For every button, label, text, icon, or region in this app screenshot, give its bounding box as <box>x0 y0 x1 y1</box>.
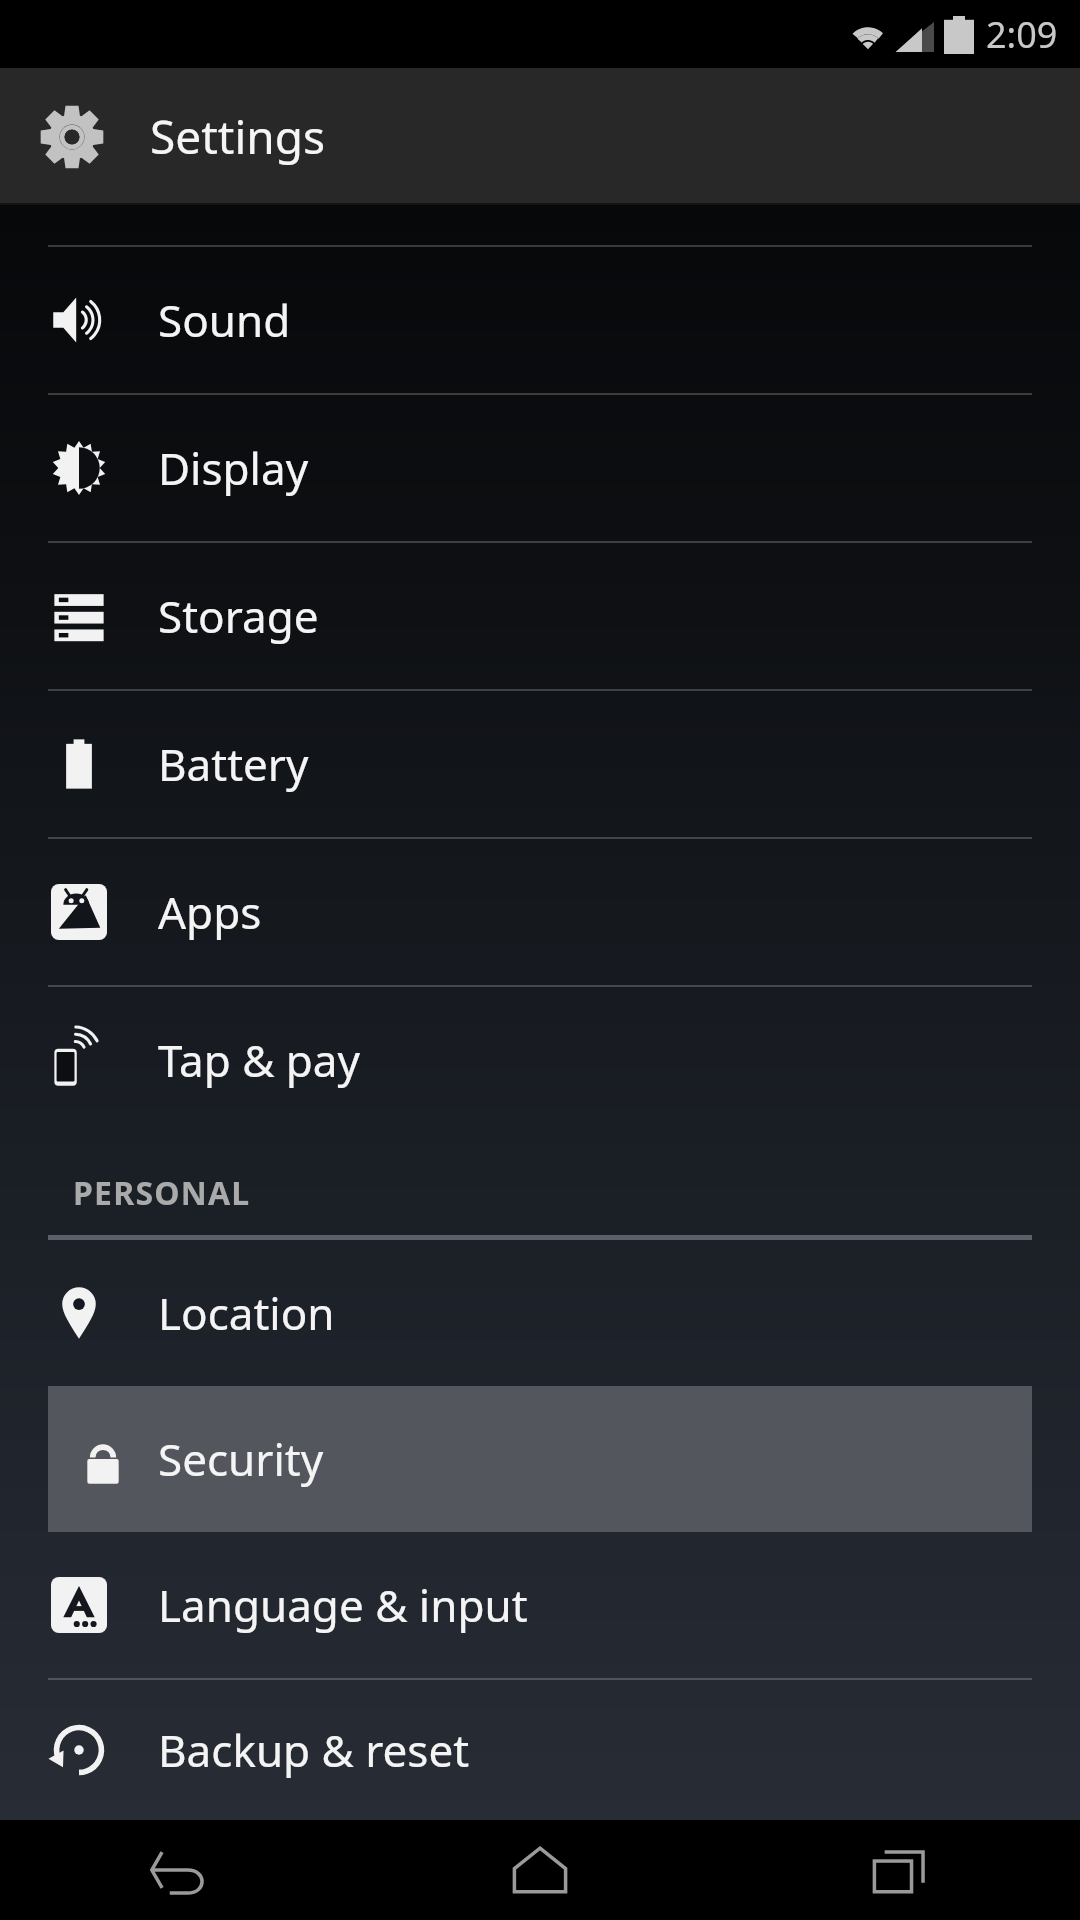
button[interactable]: Display <box>0 395 1080 541</box>
button[interactable]: Language & input <box>0 1532 1080 1678</box>
button[interactable]: Backup & reset <box>0 1680 1080 1820</box>
staticText: Sound <box>158 290 291 350</box>
button[interactable]: Recent apps <box>720 1820 1080 1920</box>
staticText: 2:09 <box>986 10 1058 59</box>
button[interactable]: Tap & pay <box>0 987 1080 1133</box>
button[interactable]: Apps <box>0 839 1080 985</box>
staticText: Security <box>158 1429 324 1489</box>
staticText: Display <box>158 438 309 498</box>
staticText: Apps <box>158 882 262 942</box>
button[interactable]: Sound <box>0 247 1080 393</box>
staticText: PERSONAL <box>73 1171 251 1215</box>
button[interactable]: Back <box>0 1820 360 1920</box>
staticText: Language & input <box>158 1575 528 1635</box>
staticText: Storage <box>158 586 319 646</box>
button[interactable]: Home <box>360 1820 720 1920</box>
staticText: Settings <box>150 105 326 168</box>
staticText: Tap & pay <box>158 1030 360 1090</box>
button[interactable]: Location <box>0 1240 1080 1386</box>
button[interactable]: Battery <box>0 691 1080 837</box>
button[interactable]: Security <box>48 1386 1032 1532</box>
staticText: Battery <box>158 734 309 794</box>
staticText: Backup & reset <box>158 1720 470 1780</box>
staticText: Location <box>158 1283 335 1343</box>
button[interactable]: Storage <box>0 543 1080 689</box>
